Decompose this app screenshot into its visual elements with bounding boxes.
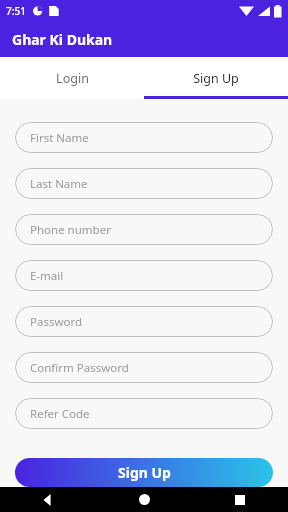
staticText: Ghar Ki Dukan bbox=[12, 30, 113, 49]
staticText: Sign Up bbox=[118, 463, 171, 482]
button[interactable]: Recent apps bbox=[192, 487, 288, 512]
button[interactable]: Back bbox=[0, 487, 96, 512]
staticText: Last Name bbox=[30, 176, 88, 192]
button[interactable]: Last Name bbox=[15, 168, 273, 199]
staticText: Password bbox=[30, 314, 83, 330]
staticText: Phone number bbox=[30, 222, 111, 238]
button[interactable]: Refer Code bbox=[15, 398, 273, 429]
button[interactable]: E-mail bbox=[15, 260, 273, 291]
button[interactable]: Home bbox=[96, 487, 192, 512]
button[interactable]: Login bbox=[0, 57, 144, 99]
button[interactable]: Sign Up bbox=[144, 57, 288, 99]
button[interactable]: Phone number bbox=[15, 214, 273, 245]
button[interactable]: Confirm Password bbox=[15, 352, 273, 383]
staticText: Refer Code bbox=[30, 406, 90, 422]
staticText: Login bbox=[56, 70, 89, 87]
staticText: Sign Up bbox=[193, 70, 239, 87]
button[interactable]: Password bbox=[15, 306, 273, 337]
button[interactable]: First Name bbox=[15, 122, 273, 153]
staticText: 7:51 bbox=[6, 4, 26, 18]
staticText: Confirm Password bbox=[30, 360, 129, 376]
button[interactable]: Sign Up bbox=[15, 458, 273, 487]
staticText: E-mail bbox=[30, 268, 64, 284]
staticText: First Name bbox=[30, 130, 89, 146]
